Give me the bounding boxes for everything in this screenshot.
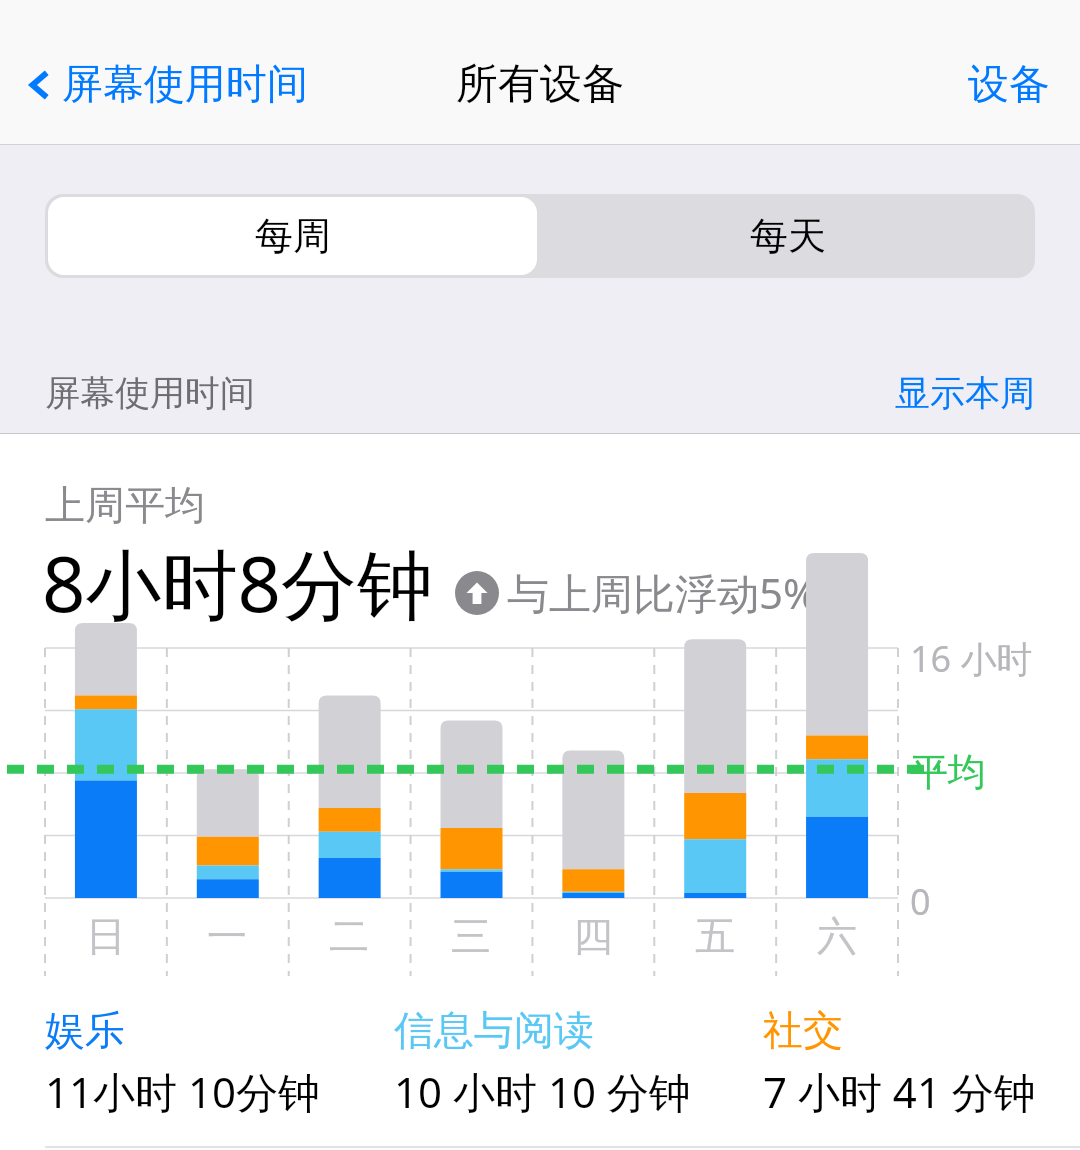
- button[interactable]: 设备: [938, 49, 1080, 121]
- staticText: 所有设备: [456, 58, 624, 111]
- staticText: 社交: [763, 1005, 843, 1055]
- staticText: 三: [451, 911, 491, 961]
- staticText: 10 小时 10 分钟: [394, 1063, 691, 1120]
- staticText: 信息与阅读: [394, 1005, 594, 1055]
- staticText: 娱乐: [45, 1005, 125, 1055]
- staticText: 一: [207, 911, 247, 961]
- staticText: 六: [817, 911, 857, 961]
- staticText: 设备: [968, 59, 1050, 111]
- button[interactable]: 屏幕使用时间: [0, 51, 320, 119]
- button[interactable]: 每天: [540, 194, 1035, 278]
- staticText: 二: [329, 911, 369, 961]
- button[interactable]: 信息与阅读: [394, 1005, 695, 1120]
- staticText: 平均: [910, 748, 986, 796]
- other: 上升: [455, 571, 499, 615]
- staticText: 四: [573, 911, 613, 961]
- staticText: 16 小时: [910, 634, 1033, 683]
- staticText: 日: [86, 911, 126, 961]
- staticText: 五: [695, 911, 735, 961]
- staticText: 屏幕使用时间: [62, 59, 308, 111]
- button[interactable]: 每周: [48, 197, 537, 275]
- staticText: 0: [910, 877, 931, 926]
- staticText: 8小时8分钟: [42, 531, 433, 635]
- staticText: 上周平均: [45, 480, 205, 530]
- button[interactable]: 娱乐: [45, 1005, 325, 1120]
- button[interactable]: 社交: [763, 1005, 1040, 1120]
- staticText: 每周: [255, 212, 331, 260]
- button[interactable]: 显示本周: [880, 361, 1050, 425]
- staticText: 7 小时 41 分钟: [763, 1063, 1036, 1120]
- staticText: 屏幕使用时间: [45, 371, 255, 415]
- staticText: 与上周比浮动5%: [507, 564, 818, 621]
- staticText: 显示本周: [895, 371, 1035, 415]
- staticText: 每天: [750, 212, 826, 260]
- staticText: 11小时 10分钟: [45, 1063, 321, 1120]
